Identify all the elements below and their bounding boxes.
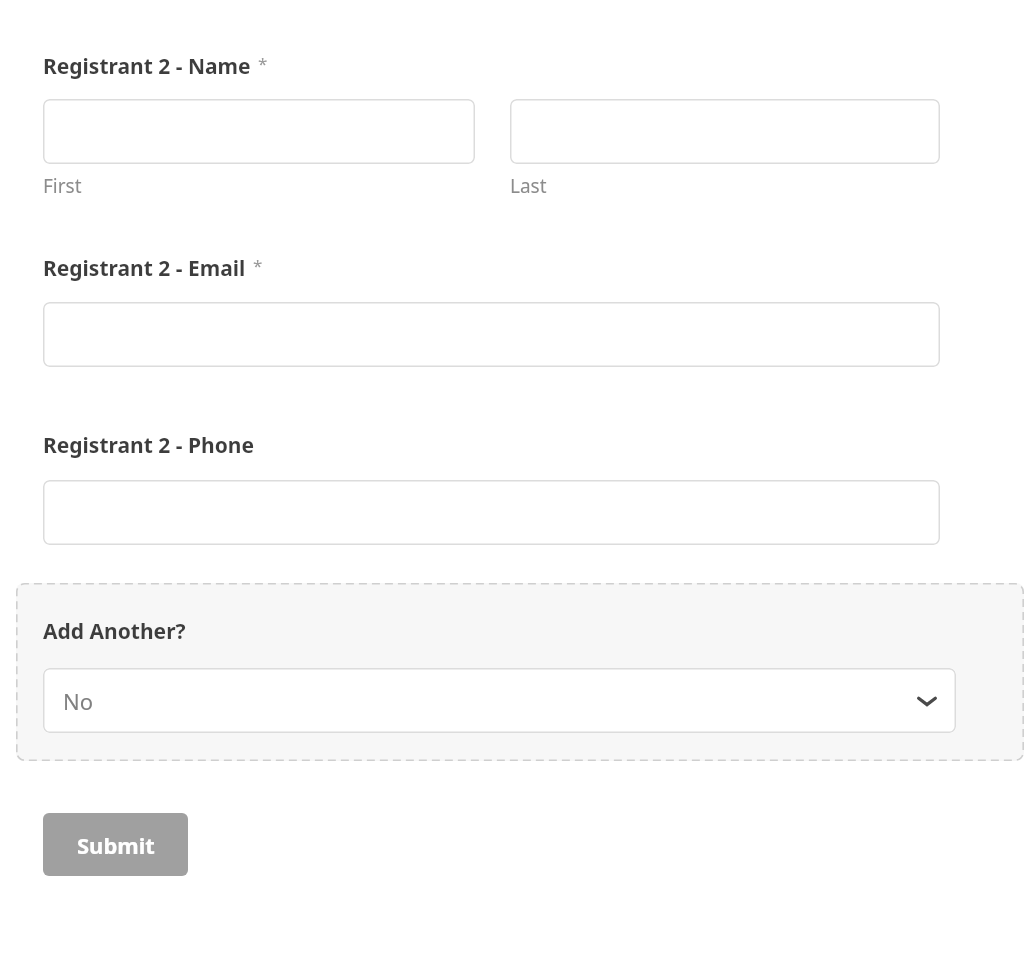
staticText: Registrant 2 - Phone: [43, 431, 254, 460]
staticText: First: [43, 173, 82, 199]
button[interactable]: Text input: [43, 302, 940, 367]
staticText: Last: [510, 173, 547, 199]
staticText: Registrant 2 - Name: [43, 52, 251, 81]
button[interactable]: Text input: [43, 480, 940, 545]
staticText: *: [258, 52, 268, 75]
button[interactable]: Text input: [43, 99, 475, 164]
staticText: Add Another?: [43, 617, 186, 646]
button[interactable]: Add Another? select: No: [43, 668, 956, 733]
button[interactable]: Text input: [510, 99, 940, 164]
button[interactable]: Submit: [43, 813, 188, 876]
staticText: *: [253, 254, 263, 277]
staticText: Submit: [77, 830, 155, 860]
staticText: Registrant 2 - Email: [43, 254, 246, 283]
staticText: No: [63, 686, 94, 716]
